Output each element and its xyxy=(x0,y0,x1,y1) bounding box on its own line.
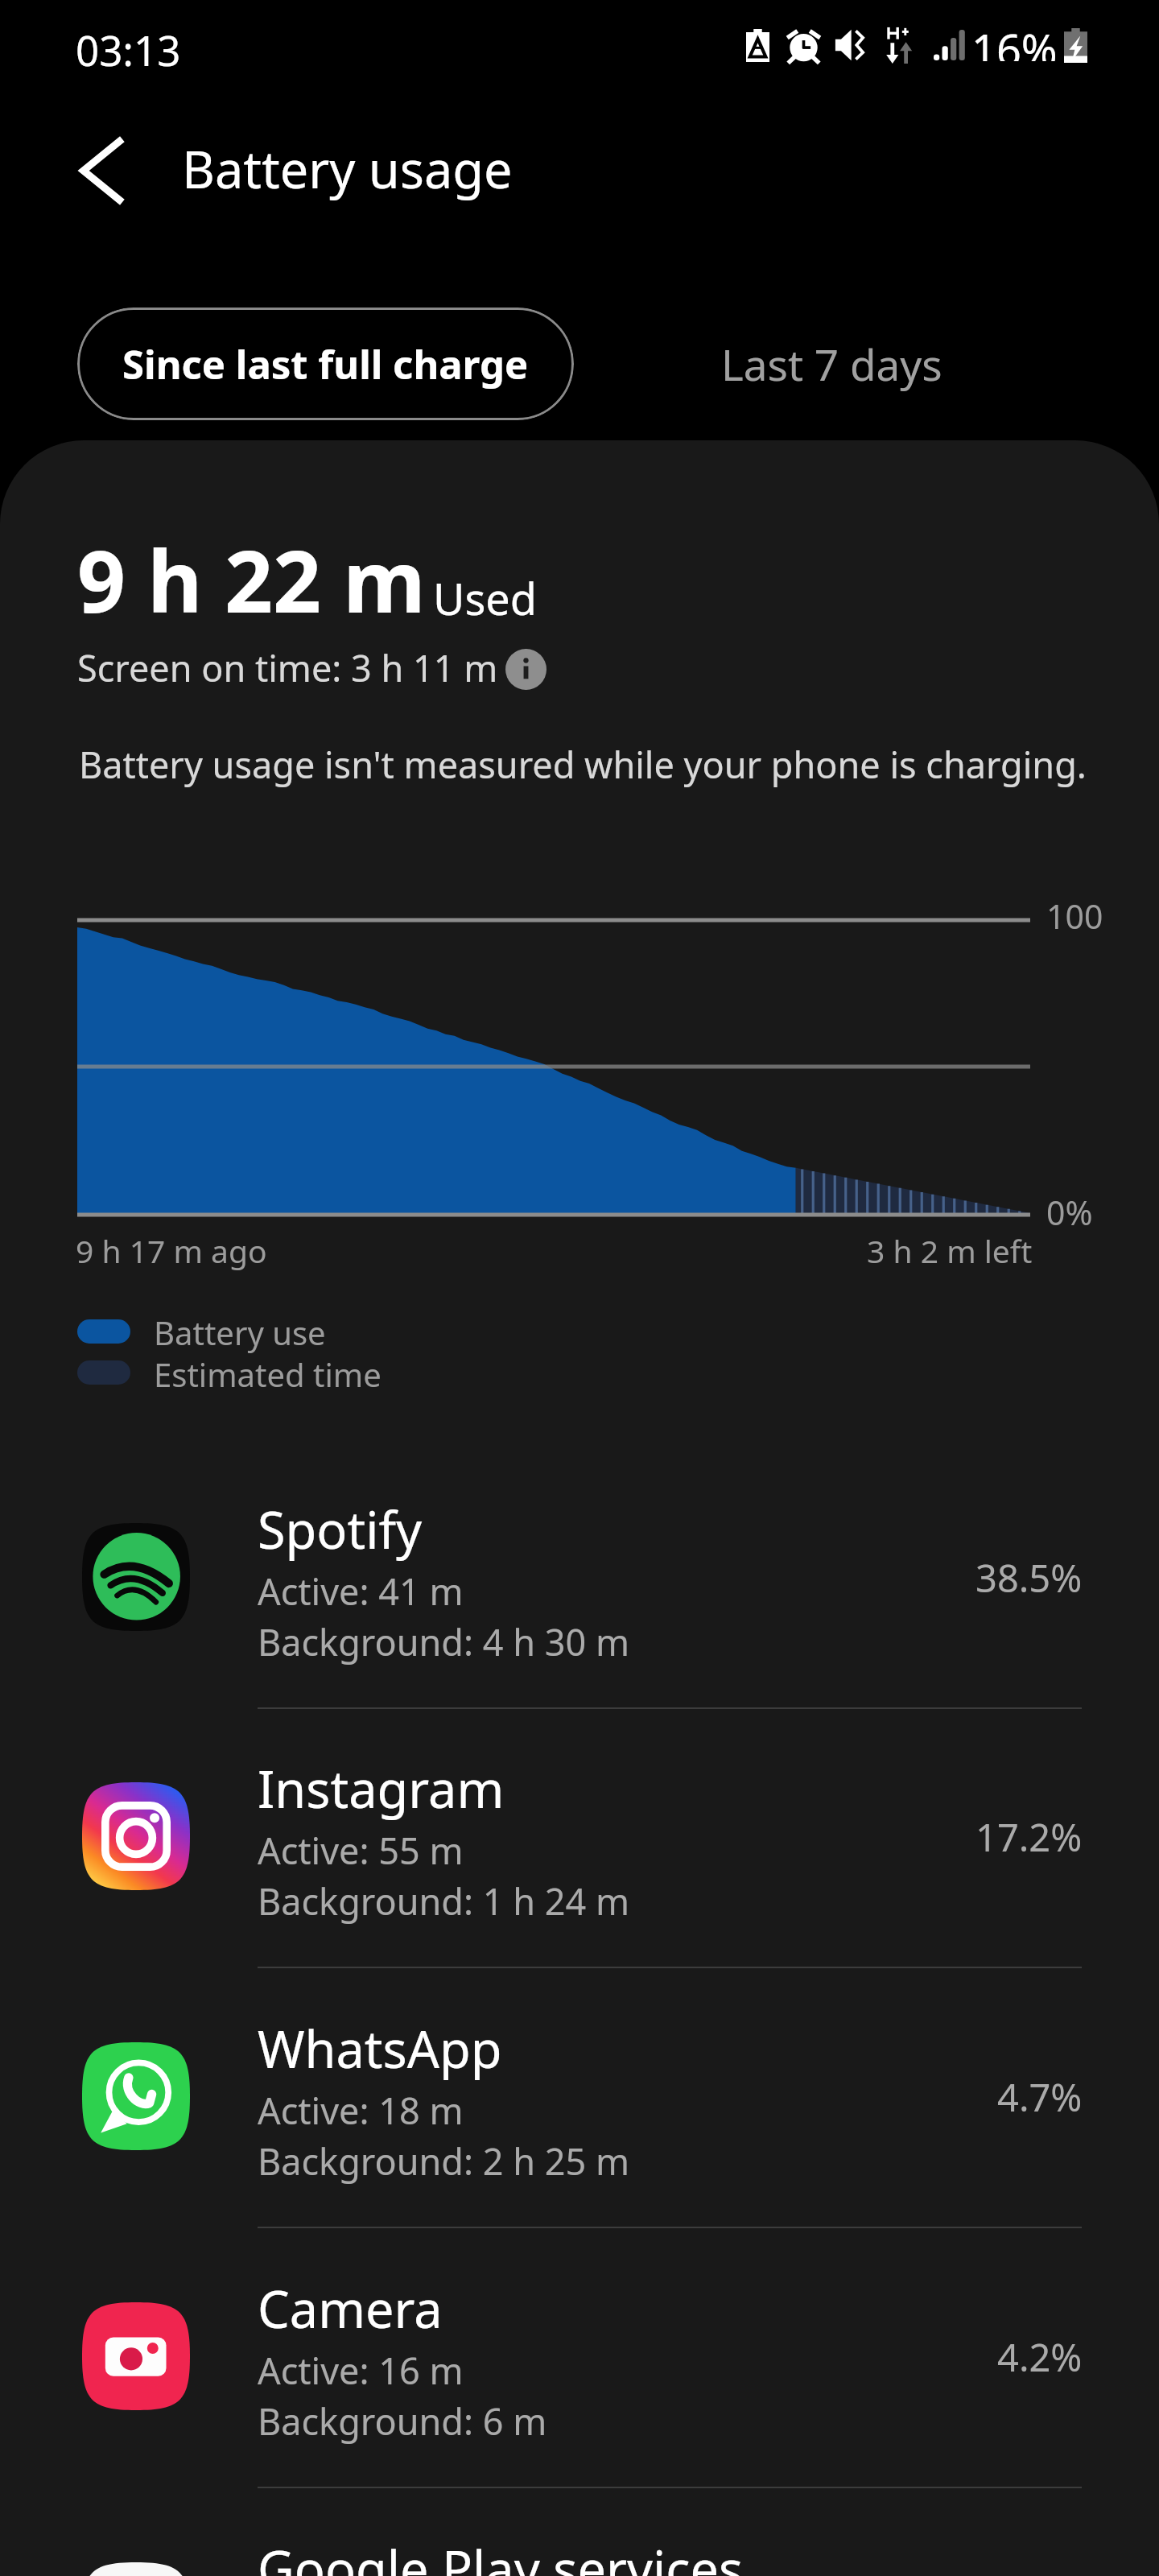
staticText: Active: 18 m xyxy=(258,2086,464,2135)
staticText: Active: 55 m xyxy=(258,1826,464,1875)
staticText: Active: 41 m xyxy=(258,1567,464,1616)
staticText: 9 h 22 m xyxy=(77,522,426,638)
button[interactable]: WhatsApp xyxy=(0,1993,1159,2227)
staticText: 17.2% xyxy=(975,1811,1083,1863)
staticText: Active: 16 m xyxy=(258,2346,464,2395)
staticText: Instagram xyxy=(258,1754,505,1823)
staticText: 3 h 2 m left xyxy=(867,1229,1033,1272)
button[interactable]: Spotify xyxy=(0,1474,1159,1707)
staticText: Since last full charge xyxy=(122,337,529,391)
staticText: Google Play services xyxy=(258,2534,744,2576)
button[interactable]: More information xyxy=(505,649,547,690)
button[interactable]: Last 7 days xyxy=(674,308,989,420)
staticText: Battery usage xyxy=(182,134,513,204)
staticText: 4.2% xyxy=(997,2331,1083,2383)
staticText: Screen on time: 3 h 11 m xyxy=(77,643,498,692)
staticText: 16% xyxy=(971,19,1058,61)
staticText: Background: 1 h 24 m xyxy=(258,1876,629,1926)
button[interactable]: Navigate up xyxy=(50,119,153,222)
staticText: 9 h 17 m ago xyxy=(76,1229,267,1272)
button[interactable]: Camera xyxy=(0,2253,1159,2487)
staticText: WhatsApp xyxy=(258,2014,502,2083)
staticText: Spotify xyxy=(258,1495,423,1564)
staticText: Background: 6 m xyxy=(258,2396,547,2446)
staticText: Battery usage isn't measured while your … xyxy=(79,740,1159,789)
staticText: 100 xyxy=(1046,894,1103,939)
staticText: Estimated time xyxy=(154,1352,382,1396)
staticText: 03:13 xyxy=(76,22,181,77)
staticText: Camera xyxy=(258,2274,443,2343)
staticText: Background: 2 h 25 m xyxy=(258,2136,629,2186)
staticText: Battery use xyxy=(154,1311,326,1354)
staticText: 38.5% xyxy=(975,1552,1083,1604)
button[interactable]: Google Play services xyxy=(0,2513,1159,2576)
staticText: 4.7% xyxy=(997,2071,1083,2123)
button[interactable]: Instagram xyxy=(0,1733,1159,1967)
button[interactable]: Since last full charge xyxy=(77,308,574,420)
staticText: Used xyxy=(433,568,538,628)
staticText: Background: 4 h 30 m xyxy=(258,1617,629,1666)
staticText: Last 7 days xyxy=(721,335,942,393)
staticText: 0% xyxy=(1046,1190,1093,1235)
